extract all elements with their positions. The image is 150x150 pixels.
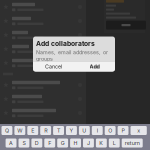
button[interactable]: x: [130, 126, 147, 135]
staticText: Q: [5, 127, 9, 134]
button[interactable]: U: [79, 126, 90, 135]
staticText: L: [113, 140, 116, 146]
staticText: D: [35, 140, 39, 146]
button[interactable]: G: [57, 138, 68, 147]
button[interactable]: H: [70, 138, 81, 147]
button[interactable]: R: [40, 126, 51, 135]
staticText: P: [122, 127, 125, 134]
staticText: return: [125, 140, 140, 146]
button[interactable]: O: [105, 126, 116, 135]
button[interactable]: Q: [1, 126, 12, 135]
button[interactable]: A: [6, 138, 16, 147]
staticText: Names, email addresses, or groups: [36, 49, 108, 62]
staticText: T: [57, 127, 60, 134]
button[interactable]: return: [122, 138, 143, 147]
button[interactable]: D: [31, 138, 42, 147]
staticText: A: [9, 140, 13, 146]
staticText: O: [108, 127, 112, 134]
staticText: S: [22, 140, 25, 146]
button[interactable]: Y: [66, 126, 77, 135]
button[interactable]: W: [14, 126, 25, 135]
staticText: F: [48, 140, 51, 146]
staticText: Add collaborators: [36, 39, 95, 48]
staticText: H: [73, 140, 77, 146]
button[interactable]: Add: [74, 61, 115, 71]
button[interactable]: I: [92, 126, 103, 135]
button[interactable]: E: [27, 126, 38, 135]
button[interactable]: Cancel: [33, 61, 74, 71]
button[interactable]: F: [44, 138, 55, 147]
staticText: Add: [89, 63, 99, 70]
staticText: x: [137, 127, 140, 134]
staticText: E: [31, 127, 34, 134]
staticText: I: [97, 127, 98, 134]
button[interactable]: S: [18, 138, 29, 147]
staticText: K: [99, 140, 103, 146]
button[interactable]: J: [83, 138, 94, 147]
button[interactable]: P: [118, 126, 128, 135]
staticText: G: [61, 140, 65, 146]
staticText: Cancel: [45, 63, 62, 70]
button[interactable]: T: [53, 126, 64, 135]
staticText: U: [82, 127, 86, 134]
staticText: R: [44, 127, 47, 134]
staticText: Y: [69, 127, 73, 134]
staticText: J: [87, 140, 90, 146]
button[interactable]: K: [96, 138, 107, 147]
staticText: W: [17, 127, 22, 134]
button[interactable]: L: [109, 138, 120, 147]
